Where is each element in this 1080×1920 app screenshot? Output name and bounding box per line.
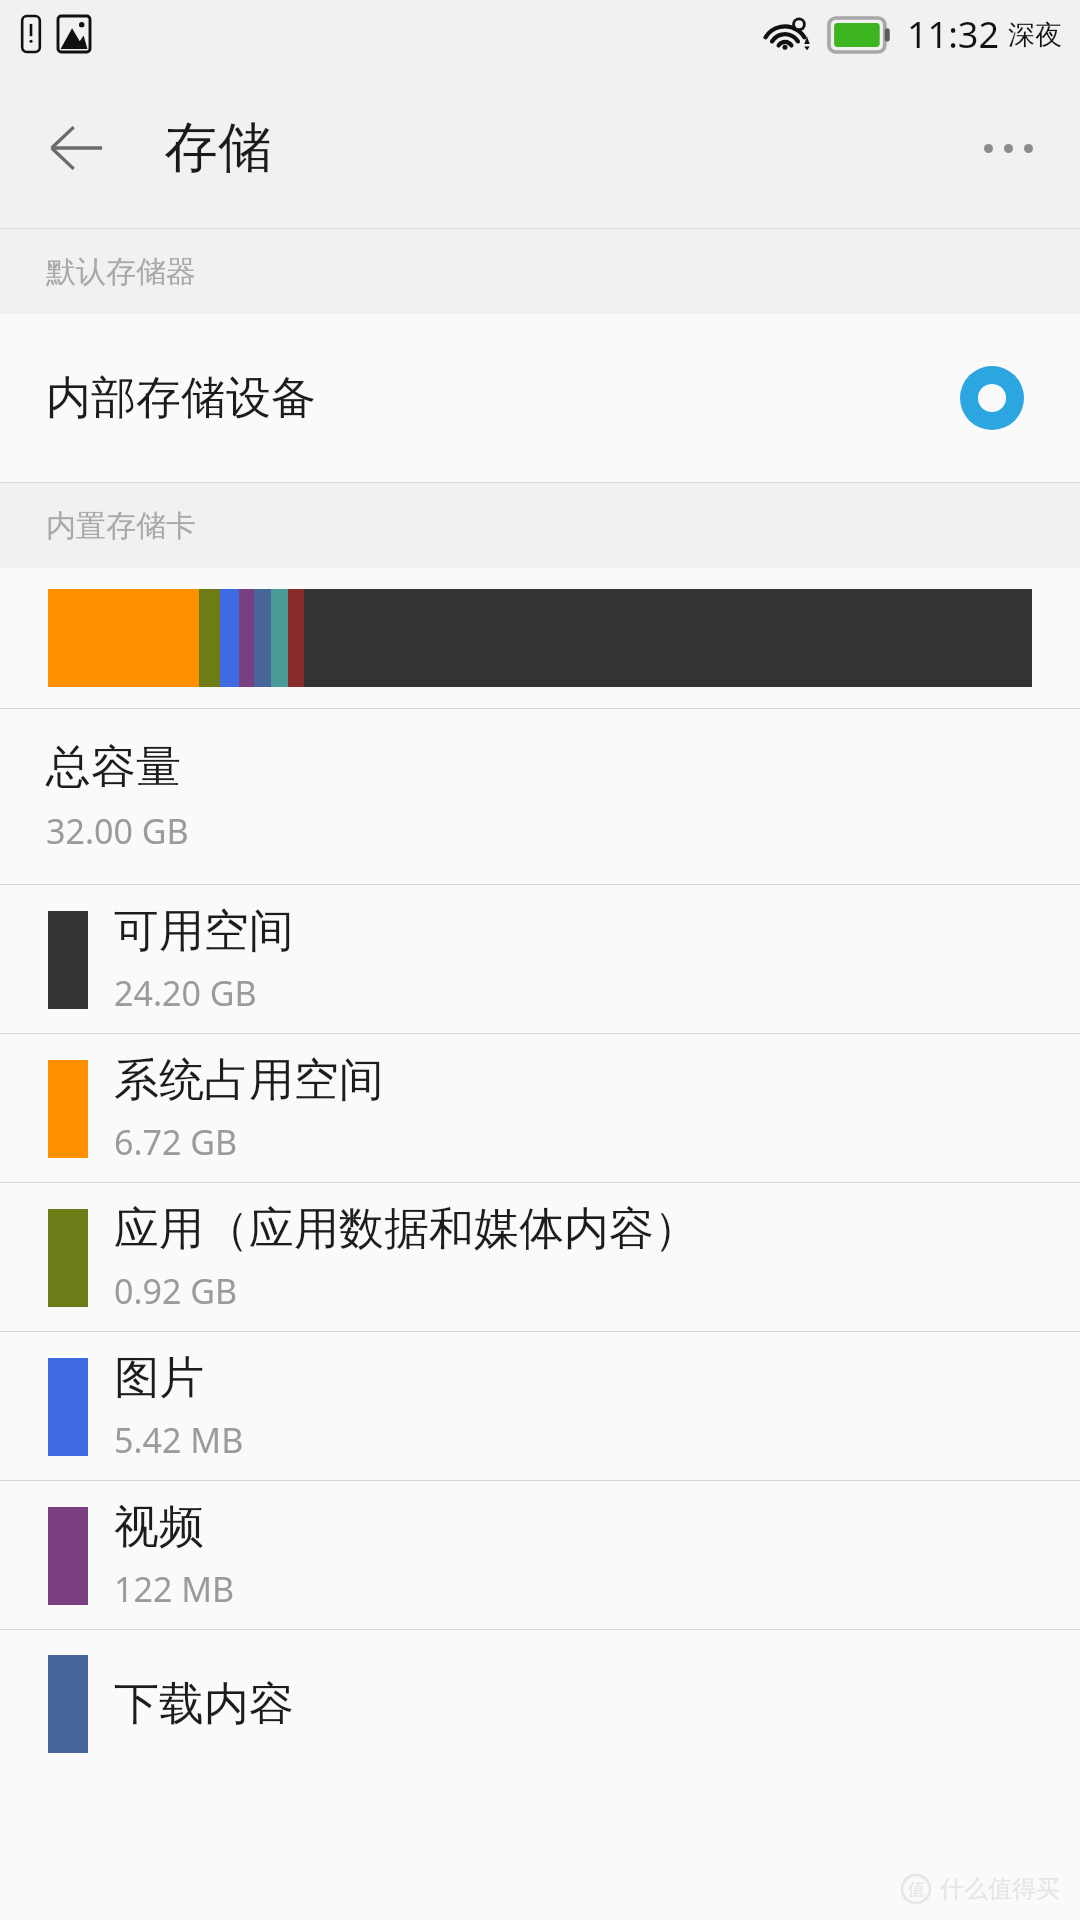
- staticText: 视频: [114, 1499, 204, 1556]
- staticText: 存储: [164, 114, 272, 182]
- staticText: 6.72 GB: [114, 1119, 238, 1165]
- button[interactable]: 总容量: [0, 709, 1080, 884]
- staticText: 应用（应用数据和媒体内容）: [114, 1201, 699, 1258]
- staticText: 0.92 GB: [114, 1268, 238, 1314]
- button[interactable]: More options: [960, 100, 1056, 196]
- staticText: 值: [908, 1879, 925, 1900]
- staticText: 什么值得买: [940, 1874, 1060, 1904]
- button[interactable]: 系统占用空间: [0, 1034, 1080, 1182]
- button[interactable]: 内部存储设备: [0, 314, 1080, 482]
- button[interactable]: Back: [36, 108, 116, 188]
- button[interactable]: 应用（应用数据和媒体内容）: [0, 1183, 1080, 1331]
- staticText: 内置存储卡: [46, 507, 196, 545]
- staticText: 可用空间: [114, 903, 294, 960]
- staticText: 图片: [114, 1350, 204, 1407]
- button[interactable]: 视频: [0, 1481, 1080, 1629]
- staticText: 32.00 GB: [46, 808, 189, 854]
- staticText: 11:32: [907, 10, 1000, 59]
- staticText: 深夜: [1008, 18, 1062, 52]
- staticText: 122 MB: [114, 1566, 235, 1612]
- button[interactable]: 图片: [0, 1332, 1080, 1480]
- button[interactable]: 可用空间: [0, 885, 1080, 1033]
- staticText: 内部存储设备: [46, 370, 316, 427]
- staticText: 5.42 MB: [114, 1417, 244, 1463]
- staticText: 系统占用空间: [114, 1052, 384, 1109]
- staticText: 24.20 GB: [114, 970, 257, 1016]
- staticText: 下载内容: [114, 1676, 294, 1733]
- staticText: 总容量: [46, 739, 181, 796]
- staticText: 默认存储器: [46, 253, 196, 291]
- button[interactable]: 下载内容: [0, 1630, 1080, 1778]
